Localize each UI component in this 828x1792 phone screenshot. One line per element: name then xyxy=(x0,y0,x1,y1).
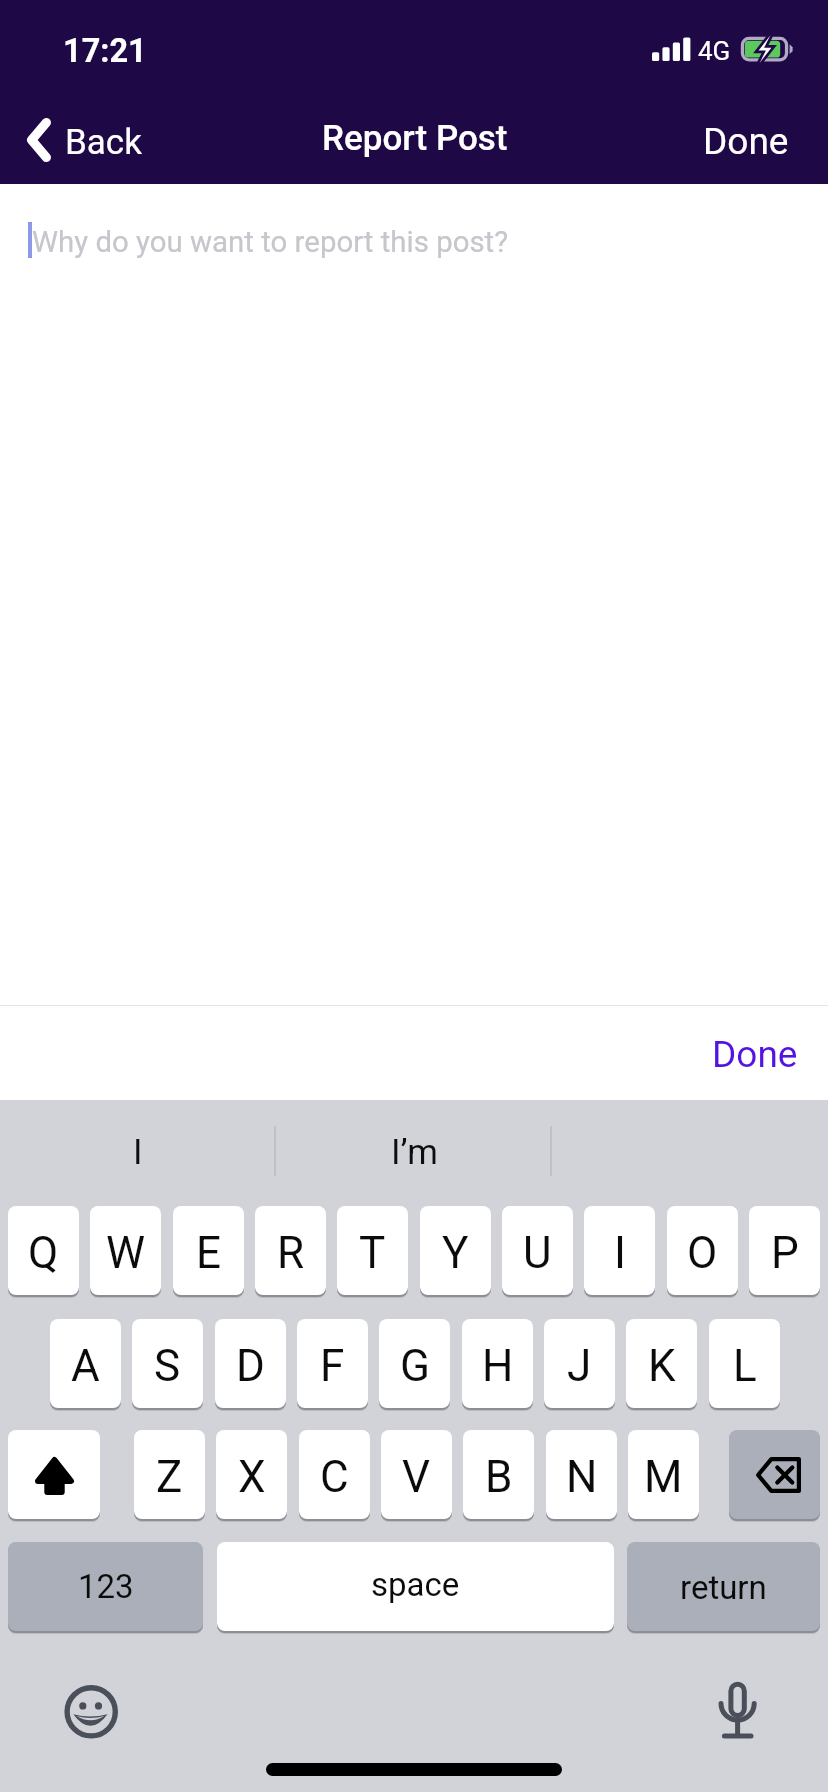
button[interactable]: A xyxy=(50,1319,121,1408)
button[interactable]: G xyxy=(379,1319,450,1408)
staticText: P xyxy=(771,1227,799,1279)
button[interactable]: Shift xyxy=(8,1430,100,1519)
staticText: K xyxy=(648,1340,676,1392)
button[interactable]: Emoji keyboard xyxy=(56,1677,126,1747)
button[interactable]: W xyxy=(90,1206,161,1295)
staticText: F xyxy=(320,1340,345,1392)
button[interactable]: H xyxy=(462,1319,533,1408)
staticText: Back xyxy=(65,122,142,163)
staticText: space xyxy=(371,1565,460,1604)
staticText: U xyxy=(523,1227,552,1279)
staticText: H xyxy=(482,1340,514,1392)
button[interactable]: Backspace xyxy=(729,1430,820,1519)
button[interactable]: I’m xyxy=(276,1100,553,1200)
button[interactable]: D xyxy=(215,1319,286,1408)
button[interactable]: L xyxy=(709,1319,780,1408)
button[interactable]: S xyxy=(132,1319,203,1408)
button[interactable]: O xyxy=(667,1206,738,1295)
button[interactable]: P xyxy=(749,1206,820,1295)
staticText: 123 xyxy=(78,1567,134,1606)
button[interactable]: return xyxy=(627,1542,820,1631)
staticText: Done xyxy=(703,120,789,163)
staticText: I xyxy=(614,1227,626,1279)
button[interactable]: C xyxy=(299,1430,370,1519)
staticText: Report Post xyxy=(322,118,508,159)
staticText: N xyxy=(566,1451,598,1503)
staticText: L xyxy=(733,1340,757,1392)
button[interactable]: Y xyxy=(420,1206,491,1295)
staticText: O xyxy=(687,1227,718,1279)
staticText: B xyxy=(485,1451,513,1503)
staticText: I xyxy=(133,1132,143,1173)
staticText: M xyxy=(644,1451,683,1503)
button[interactable]: K xyxy=(626,1319,697,1408)
button[interactable]: T xyxy=(337,1206,408,1295)
staticText: A xyxy=(71,1340,100,1392)
button[interactable]: Back xyxy=(10,103,160,176)
button[interactable]: J xyxy=(544,1319,615,1408)
button[interactable]: V xyxy=(381,1430,452,1519)
staticText: G xyxy=(400,1340,430,1392)
button[interactable]: I xyxy=(584,1206,655,1295)
button[interactable]: X xyxy=(216,1430,287,1519)
staticText: 4G xyxy=(698,36,731,66)
button[interactable]: Done xyxy=(690,1013,828,1093)
staticText: E xyxy=(196,1227,222,1279)
staticText: J xyxy=(567,1340,592,1392)
button[interactable]: U xyxy=(502,1206,573,1295)
button[interactable]: Done xyxy=(682,103,812,176)
button[interactable]: I xyxy=(0,1100,276,1200)
button[interactable]: R xyxy=(255,1206,326,1295)
staticText: Why do you want to report this post? xyxy=(32,225,509,259)
button[interactable]: Voice input xyxy=(703,1674,773,1744)
button[interactable]: Z xyxy=(134,1430,205,1519)
button[interactable]: B xyxy=(463,1430,534,1519)
staticText: Q xyxy=(28,1227,59,1279)
button[interactable]: 123 xyxy=(8,1542,203,1631)
staticText: T xyxy=(359,1227,386,1279)
button[interactable]: F xyxy=(297,1319,368,1408)
button[interactable]: space xyxy=(217,1542,614,1631)
staticText: 17:21 xyxy=(63,32,147,70)
staticText: D xyxy=(236,1340,265,1392)
staticText: Z xyxy=(156,1451,183,1503)
staticText: Done xyxy=(712,1033,798,1076)
staticText: return xyxy=(680,1568,767,1607)
button[interactable]: Q xyxy=(8,1206,79,1295)
staticText: Y xyxy=(442,1227,469,1279)
button[interactable]: E xyxy=(173,1206,244,1295)
staticText: S xyxy=(154,1340,181,1392)
staticText: W xyxy=(106,1227,146,1279)
staticText: I’m xyxy=(391,1132,438,1173)
button[interactable]: N xyxy=(546,1430,617,1519)
staticText: R xyxy=(277,1227,305,1279)
staticText: X xyxy=(238,1451,266,1503)
staticText: V xyxy=(402,1451,431,1503)
staticText: C xyxy=(320,1451,349,1503)
button[interactable]: M xyxy=(628,1430,699,1519)
